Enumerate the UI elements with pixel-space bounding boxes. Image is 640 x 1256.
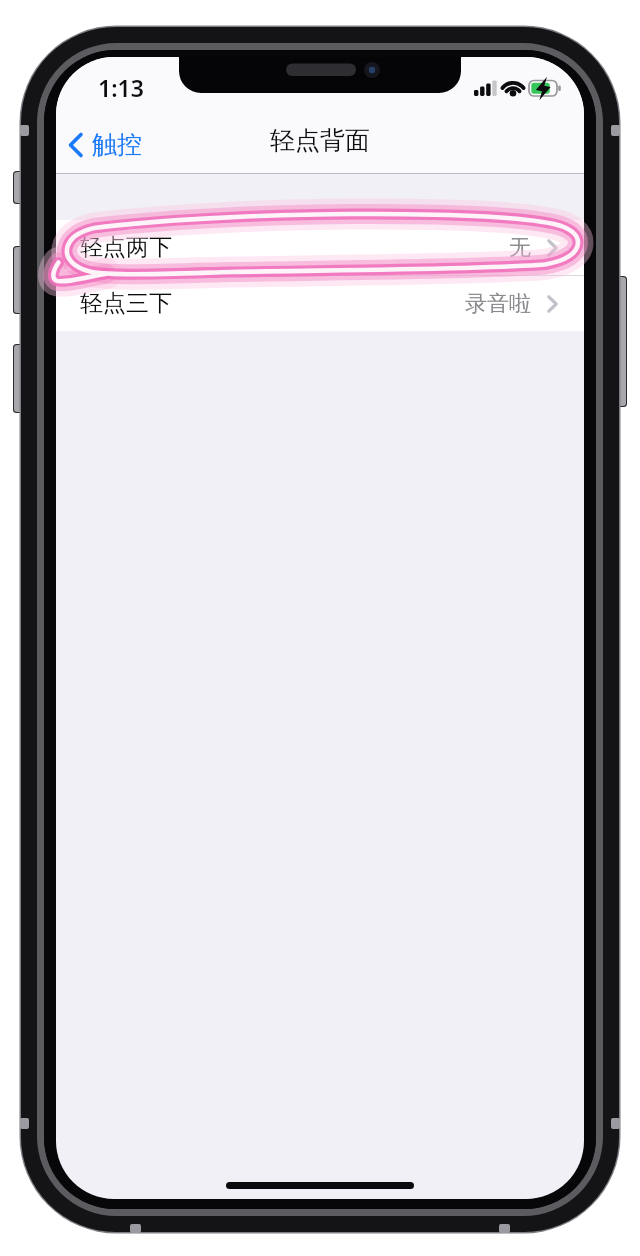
staticText: 录音啦 bbox=[465, 290, 531, 318]
staticText: 1:13 bbox=[98, 72, 144, 103]
button[interactable]: 轻点两下 bbox=[56, 220, 584, 275]
staticText: 无 bbox=[509, 234, 531, 262]
staticText: 轻点两下 bbox=[80, 233, 172, 262]
staticText: 触控 bbox=[92, 129, 142, 160]
staticText: 轻点背面 bbox=[270, 125, 370, 156]
button[interactable]: 触控 bbox=[64, 127, 146, 162]
button[interactable]: 轻点三下 bbox=[56, 276, 584, 331]
staticText: 轻点三下 bbox=[80, 289, 172, 318]
